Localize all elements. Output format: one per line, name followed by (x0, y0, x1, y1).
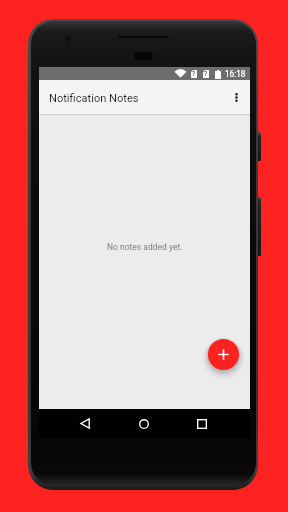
button[interactable]: Home (132, 409, 156, 438)
button[interactable]: Add note (208, 339, 239, 370)
staticText: ? (192, 70, 196, 78)
staticText: 16:18 (225, 69, 246, 79)
staticText: Notification Notes (49, 92, 139, 105)
button[interactable]: More options (222, 80, 250, 114)
staticText: ? (204, 70, 208, 78)
staticText: No notes added yet. (107, 242, 183, 252)
button[interactable]: Recents (190, 409, 214, 438)
button[interactable]: Back (73, 409, 97, 438)
